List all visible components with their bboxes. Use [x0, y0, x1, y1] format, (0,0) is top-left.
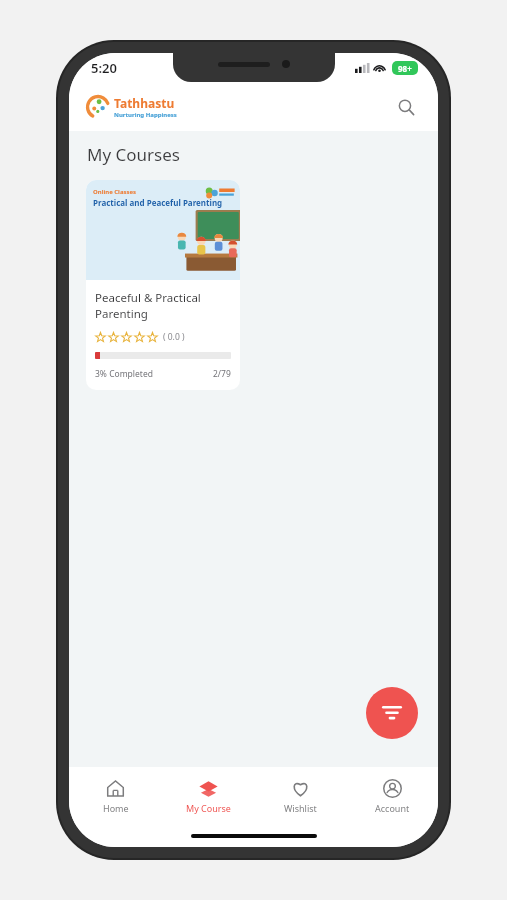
staticText: 5:20 — [91, 59, 117, 77]
staticText: Nurturing Happiness — [114, 111, 177, 119]
staticText: 2/79 — [213, 368, 231, 380]
button[interactable]: Account — [346, 767, 438, 825]
staticText: Tathhastu — [114, 95, 175, 111]
staticText: Online Classes — [93, 188, 137, 196]
button[interactable]: My Course — [162, 767, 254, 825]
button[interactable]: Filter — [366, 687, 418, 739]
staticText: 98+ — [398, 63, 412, 74]
staticText: My Course — [186, 802, 231, 814]
staticText: Wishlist — [284, 802, 317, 814]
staticText: My Courses — [87, 143, 180, 166]
staticText: 3% Completed — [95, 368, 153, 380]
staticText: Account — [375, 802, 410, 814]
button[interactable]: Home — [69, 767, 162, 825]
staticText: Practical and Peaceful Parenting — [93, 197, 223, 208]
staticText: Peaceful & Practical Parenting — [95, 290, 201, 321]
staticText: ( 0.0 ) — [163, 331, 185, 343]
button[interactable]: Online Classes — [86, 180, 240, 390]
button[interactable]: Search — [388, 89, 424, 125]
button[interactable]: Tathhastu — [87, 95, 177, 119]
button[interactable]: Wishlist — [254, 767, 346, 825]
staticText: Home — [103, 802, 129, 814]
